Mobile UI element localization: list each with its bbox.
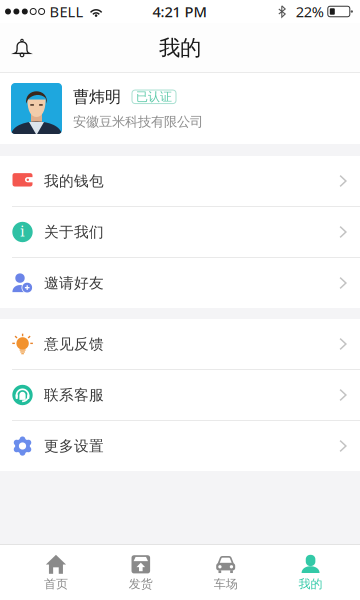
button[interactable]: 邀请好友 xyxy=(0,258,360,308)
staticText: 联系客服 xyxy=(44,386,104,404)
staticText: 首页 xyxy=(44,577,68,591)
staticText: 22% xyxy=(296,2,324,21)
button[interactable]: 发货 xyxy=(98,545,183,600)
staticText: BELL xyxy=(50,2,84,21)
staticText: 我的 xyxy=(159,35,201,61)
staticText: 已认证 xyxy=(136,89,172,104)
button[interactable]: 更多设置 xyxy=(0,421,360,471)
staticText: 邀请好友 xyxy=(44,274,104,292)
staticText: 我的钱包 xyxy=(44,172,104,190)
staticText: 意见反馈 xyxy=(44,335,104,353)
button[interactable]: 首页 xyxy=(13,545,98,600)
staticText: 发货 xyxy=(129,577,153,591)
button[interactable]: 我的 xyxy=(268,545,353,600)
button[interactable]: 联系客服 xyxy=(0,370,360,420)
button[interactable]: 车场 xyxy=(183,545,268,600)
staticText: i xyxy=(20,223,25,240)
staticText: 曹炜明 xyxy=(73,87,121,107)
staticText: 我的 xyxy=(299,577,323,591)
staticText: 安徽豆米科技有限公司 xyxy=(73,114,203,130)
staticText: 车场 xyxy=(214,577,238,591)
button[interactable]: i xyxy=(0,207,360,257)
staticText: 更多设置 xyxy=(44,437,104,455)
button[interactable]: 我的钱包 xyxy=(0,156,360,206)
button[interactable]: 曹炜明 xyxy=(0,73,360,144)
button[interactable]: 通知 xyxy=(0,26,44,70)
button[interactable]: 意见反馈 xyxy=(0,319,360,369)
staticText: 关于我们 xyxy=(44,223,104,241)
staticText: 4:21 PM xyxy=(152,2,206,21)
